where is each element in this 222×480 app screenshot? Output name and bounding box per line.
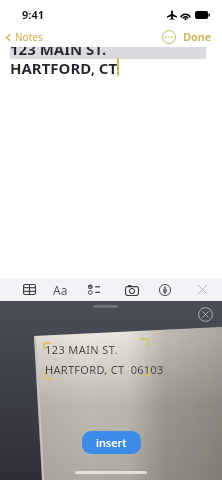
button[interactable]: Text format xyxy=(46,278,74,301)
button[interactable]: Done xyxy=(183,29,212,44)
button[interactable]: More options xyxy=(162,30,176,44)
button[interactable]: Notes xyxy=(0,30,49,44)
staticText: Notes xyxy=(15,30,43,44)
staticText: insert xyxy=(96,435,127,450)
button[interactable]: Markup xyxy=(151,278,179,301)
staticText: HARTFORD, CT 06103 xyxy=(45,362,164,377)
staticText: 123 MAIN ST. xyxy=(45,342,118,357)
button[interactable]: insert xyxy=(82,431,141,454)
button[interactable]: Close scanner xyxy=(198,307,213,322)
button[interactable]: Table xyxy=(15,278,43,301)
button[interactable]: Hide toolbar xyxy=(188,278,216,301)
button[interactable]: Camera xyxy=(118,278,146,301)
staticText: 9:41 xyxy=(22,7,44,22)
staticText: 123 MAIN ST. xyxy=(10,39,107,59)
staticText: HARTFORD, CT xyxy=(10,58,118,78)
button[interactable]: Checklist xyxy=(80,278,108,301)
staticText: Aa xyxy=(53,282,68,298)
